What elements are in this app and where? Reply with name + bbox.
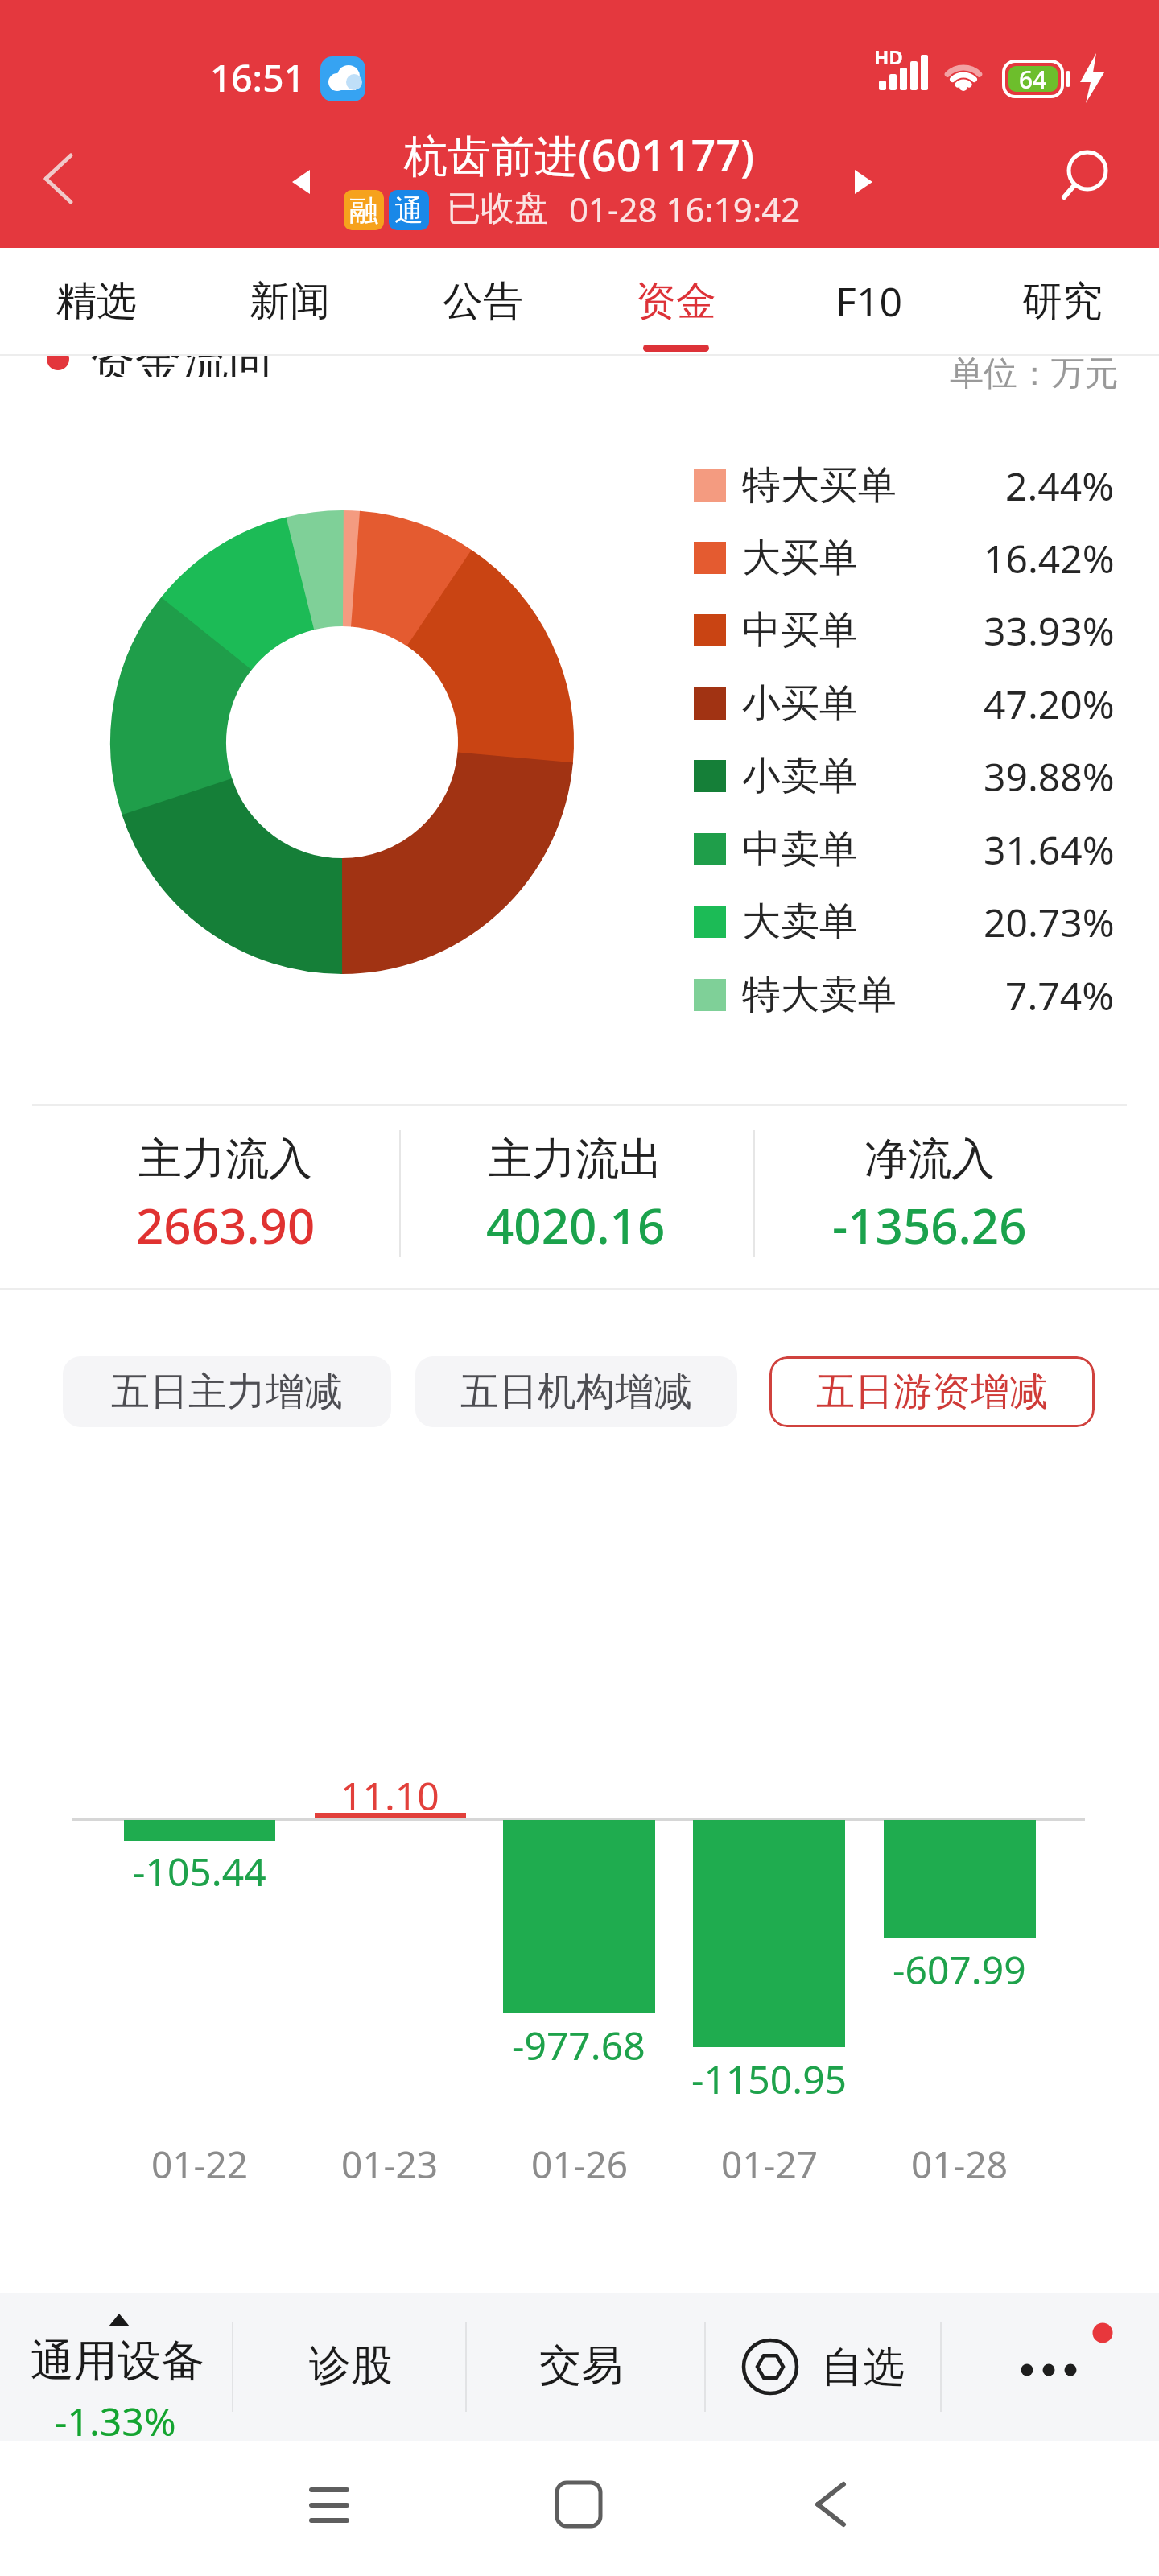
staticText: 资金流向	[89, 356, 275, 377]
staticText: HD	[874, 43, 903, 70]
staticText: 大买单	[742, 534, 858, 582]
staticText: -1356.26	[832, 1192, 1027, 1258]
staticText: F10	[835, 274, 903, 328]
staticText: 01-23	[341, 2139, 439, 2190]
staticText: 11.10	[340, 1769, 439, 1822]
staticText: 2.44%	[1005, 460, 1115, 512]
staticText: 通	[394, 192, 423, 229]
staticText: 16.42%	[984, 532, 1115, 584]
button[interactable]	[940, 2293, 1159, 2441]
staticText: 20.73%	[984, 896, 1115, 948]
staticText: 诊股	[309, 2339, 393, 2392]
staticText: 主力流入	[138, 1132, 312, 1187]
button[interactable]: 资金	[579, 248, 773, 354]
staticText: 47.20%	[984, 678, 1115, 730]
button[interactable]	[1046, 137, 1135, 225]
button[interactable]	[465, 2293, 704, 2441]
staticText: -1150.95	[691, 2053, 848, 2105]
staticText: 4020.16	[486, 1192, 666, 1258]
staticText: 01-28 16:19:42	[569, 186, 801, 232]
staticText: 研究	[1022, 276, 1103, 327]
staticText: 33.93%	[984, 605, 1115, 657]
button[interactable]	[274, 2463, 386, 2560]
button[interactable]	[0, 2293, 232, 2441]
button[interactable]	[523, 2463, 636, 2560]
staticText: 通用设备	[31, 2334, 204, 2388]
button[interactable]	[16, 137, 105, 225]
button[interactable]: 研究	[966, 248, 1159, 354]
staticText: 五日游资增减	[816, 1368, 1048, 1416]
staticText: 自选	[821, 2341, 905, 2394]
staticText: 大卖单	[742, 898, 858, 946]
staticText: 精选	[56, 276, 137, 327]
staticText: 01-28	[911, 2139, 1008, 2190]
staticText: 特大卖单	[742, 971, 897, 1019]
button[interactable]: 五日游资增减	[769, 1356, 1095, 1427]
button[interactable]	[704, 2293, 940, 2441]
staticText: 64	[1019, 63, 1047, 96]
staticText: 公告	[443, 276, 523, 327]
button[interactable]: 公告	[386, 248, 579, 354]
staticText: 资金	[636, 276, 716, 327]
button[interactable]: 五日机构增减	[415, 1356, 737, 1427]
staticText: 五日机构增减	[460, 1368, 692, 1416]
staticText: 01-26	[531, 2139, 629, 2190]
staticText: 融	[349, 192, 378, 229]
staticText: 01-22	[151, 2139, 249, 2190]
button[interactable]: 新闻	[193, 248, 386, 354]
staticText: 中买单	[742, 606, 858, 654]
staticText: 单位：万元	[950, 353, 1119, 395]
staticText: 小卖单	[742, 752, 858, 800]
button[interactable]: 精选	[0, 248, 193, 354]
staticText: 7.74%	[1005, 969, 1115, 1022]
staticText: 39.88%	[984, 750, 1115, 803]
staticText: 主力流出	[489, 1132, 662, 1187]
staticText: 新闻	[250, 276, 330, 327]
staticText: 01-27	[721, 2139, 819, 2190]
staticText: 16:51	[210, 52, 305, 103]
staticText: -105.44	[133, 1845, 266, 1897]
staticText: 小买单	[742, 679, 858, 728]
button[interactable]	[232, 2293, 465, 2441]
staticText: 杭齿前进(601177)	[404, 125, 755, 184]
staticText: 特大买单	[742, 461, 897, 510]
staticText: 中卖单	[742, 825, 858, 873]
staticText: 五日主力增减	[111, 1368, 343, 1416]
staticText: 64	[1019, 63, 1047, 96]
staticText: 2663.90	[136, 1192, 316, 1258]
staticText: 31.64%	[984, 824, 1115, 876]
staticText: 已收盘	[447, 188, 548, 230]
button[interactable]: 五日主力增减	[63, 1356, 391, 1427]
button[interactable]: F10	[773, 248, 966, 354]
button[interactable]	[773, 2463, 885, 2560]
staticText: 交易	[539, 2339, 623, 2392]
staticText: 净流入	[864, 1132, 995, 1187]
staticText: -977.68	[512, 2019, 645, 2071]
staticText: -607.99	[893, 1943, 1026, 1996]
staticText: -1.33%	[55, 2395, 176, 2447]
